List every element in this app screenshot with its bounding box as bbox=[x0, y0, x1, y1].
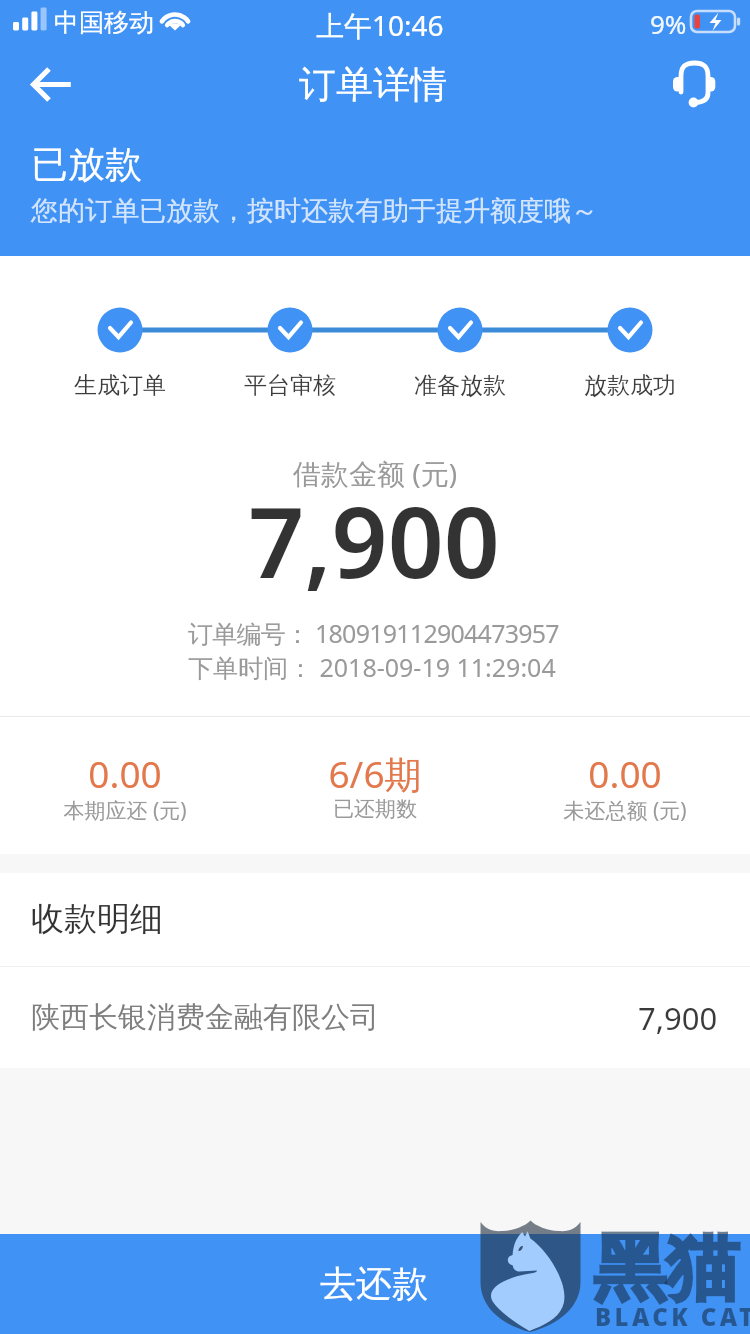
staticText: 上午10:46 bbox=[316, 6, 444, 44]
staticText: 中国移动 bbox=[54, 7, 154, 38]
staticText: 9% bbox=[650, 6, 687, 41]
staticText: 6/6期 bbox=[75, 748, 675, 799]
staticText: 本期应还 (元) bbox=[0, 796, 425, 825]
staticText: 0.00 bbox=[0, 748, 425, 798]
staticText: 7,900 bbox=[638, 997, 718, 1039]
button[interactable]: Customer service bbox=[658, 48, 738, 124]
staticText: 0.00 bbox=[325, 748, 750, 798]
staticText: 借款金额 (元) bbox=[75, 454, 675, 492]
staticText: 收款明细 bbox=[31, 898, 163, 940]
staticText: 生成订单 bbox=[0, 371, 420, 400]
button[interactable]: Back bbox=[12, 48, 92, 124]
button[interactable]: 陕西长银消费金融有限公司 bbox=[0, 967, 750, 1068]
staticText: 未还总额 (元) bbox=[325, 796, 750, 825]
staticText: 您的订单已放款，按时还款有助于提升额度哦～ bbox=[31, 194, 598, 228]
staticText: 黑猫 bbox=[593, 1223, 739, 1315]
staticText: BLACK CAT bbox=[595, 1300, 750, 1333]
staticText: 已放款 bbox=[31, 141, 142, 188]
staticText: 7,900 bbox=[74, 473, 674, 606]
staticText: 放款成功 bbox=[330, 371, 750, 400]
staticText: 准备放款 bbox=[160, 371, 750, 400]
staticText: 平台审核 bbox=[0, 371, 590, 400]
staticText: 已还期数 bbox=[75, 796, 675, 822]
staticText: 订单编号： 180919112904473957 bbox=[188, 616, 559, 650]
staticText: 去还款 bbox=[320, 1261, 428, 1306]
staticText: 下单时间： 2018-09-19 11:29:04 bbox=[188, 650, 556, 684]
staticText: 陕西长银消费金融有限公司 bbox=[31, 999, 379, 1036]
staticText: 订单详情 bbox=[73, 61, 673, 108]
button[interactable]: 去还款 bbox=[0, 1234, 750, 1334]
